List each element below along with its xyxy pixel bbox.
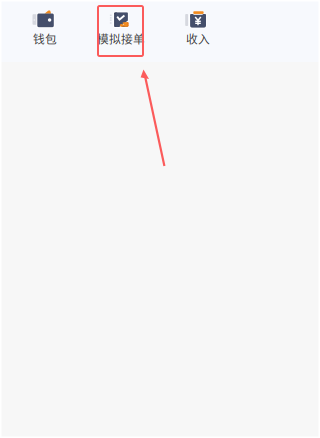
staticText: 收入 (186, 30, 210, 47)
button[interactable]: 收入 (159, 8, 235, 58)
staticText: 钱包 (33, 30, 57, 47)
staticText: 模拟接单 (97, 30, 145, 47)
button[interactable]: 模拟接单 (82, 8, 158, 58)
button[interactable]: 钱包 (5, 8, 81, 58)
